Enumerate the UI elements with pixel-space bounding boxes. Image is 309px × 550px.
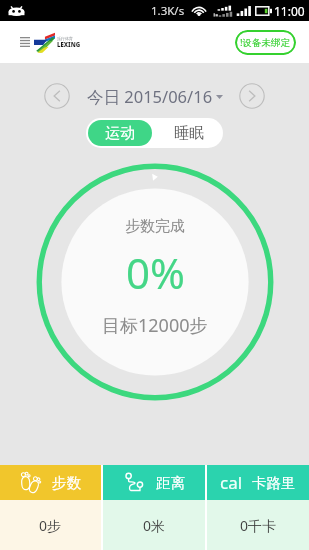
staticText: 0千卡	[240, 516, 277, 535]
staticText: 卡路里	[252, 474, 296, 492]
staticText: 今日 2015/06/16	[87, 85, 213, 108]
staticText: 0步	[39, 516, 62, 535]
staticText: 乐行体育	[57, 36, 73, 41]
button[interactable]: !设备未绑定	[235, 30, 296, 55]
staticText: cal	[220, 471, 243, 494]
staticText: 11:00	[274, 3, 305, 19]
staticText: 0%	[126, 244, 185, 301]
button[interactable]: 距离	[103, 465, 205, 550]
staticText: LEXING	[57, 41, 81, 49]
button[interactable]: 睡眠	[154, 118, 223, 148]
button[interactable]: cal	[207, 465, 309, 550]
staticText: 步数	[52, 474, 81, 492]
button[interactable]: 步数	[0, 465, 101, 550]
staticText: 目标12000步	[102, 313, 208, 338]
button[interactable]: Next day	[239, 83, 265, 109]
staticText: 1.3K/s	[151, 3, 185, 19]
staticText: 运动	[105, 124, 135, 143]
staticText: 距离	[156, 474, 185, 492]
button[interactable]: Previous day	[44, 83, 70, 109]
staticText: 步数完成	[125, 217, 185, 236]
button[interactable]: 运动	[88, 120, 152, 146]
button[interactable]: Menu	[20, 31, 30, 53]
staticText: 睡眠	[174, 124, 204, 143]
staticText: 0米	[143, 516, 166, 535]
staticText: !设备未绑定	[240, 36, 291, 49]
